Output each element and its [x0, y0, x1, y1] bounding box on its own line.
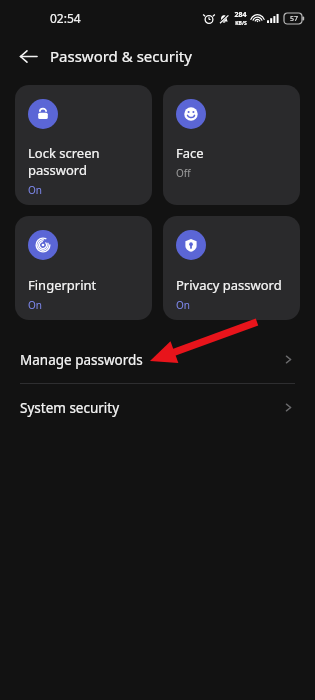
- staticText: Privacy password: [176, 276, 282, 294]
- staticText: Lock screen password: [28, 144, 100, 179]
- staticText: Password & security: [50, 46, 192, 66]
- button[interactable]: Manage passwords: [0, 336, 315, 383]
- staticText: 02:54: [50, 10, 81, 26]
- button[interactable]: Back: [10, 38, 46, 74]
- staticText: On: [28, 183, 42, 197]
- staticText: System security: [20, 399, 282, 417]
- staticText: Fingerprint: [28, 276, 97, 294]
- staticText: Manage passwords: [20, 351, 282, 369]
- button[interactable]: System security: [0, 384, 315, 431]
- staticText: Face: [176, 144, 204, 162]
- button[interactable]: Face: [163, 85, 300, 205]
- staticText: KB/S: [235, 20, 247, 27]
- staticText: 284: [234, 10, 247, 20]
- button[interactable]: Fingerprint: [15, 216, 152, 320]
- staticText: Off: [176, 166, 191, 180]
- button[interactable]: Privacy password: [163, 216, 300, 320]
- staticText: 57: [290, 14, 299, 24]
- staticText: On: [28, 298, 42, 312]
- staticText: On: [176, 298, 190, 312]
- button[interactable]: Lock screen password: [15, 85, 152, 205]
